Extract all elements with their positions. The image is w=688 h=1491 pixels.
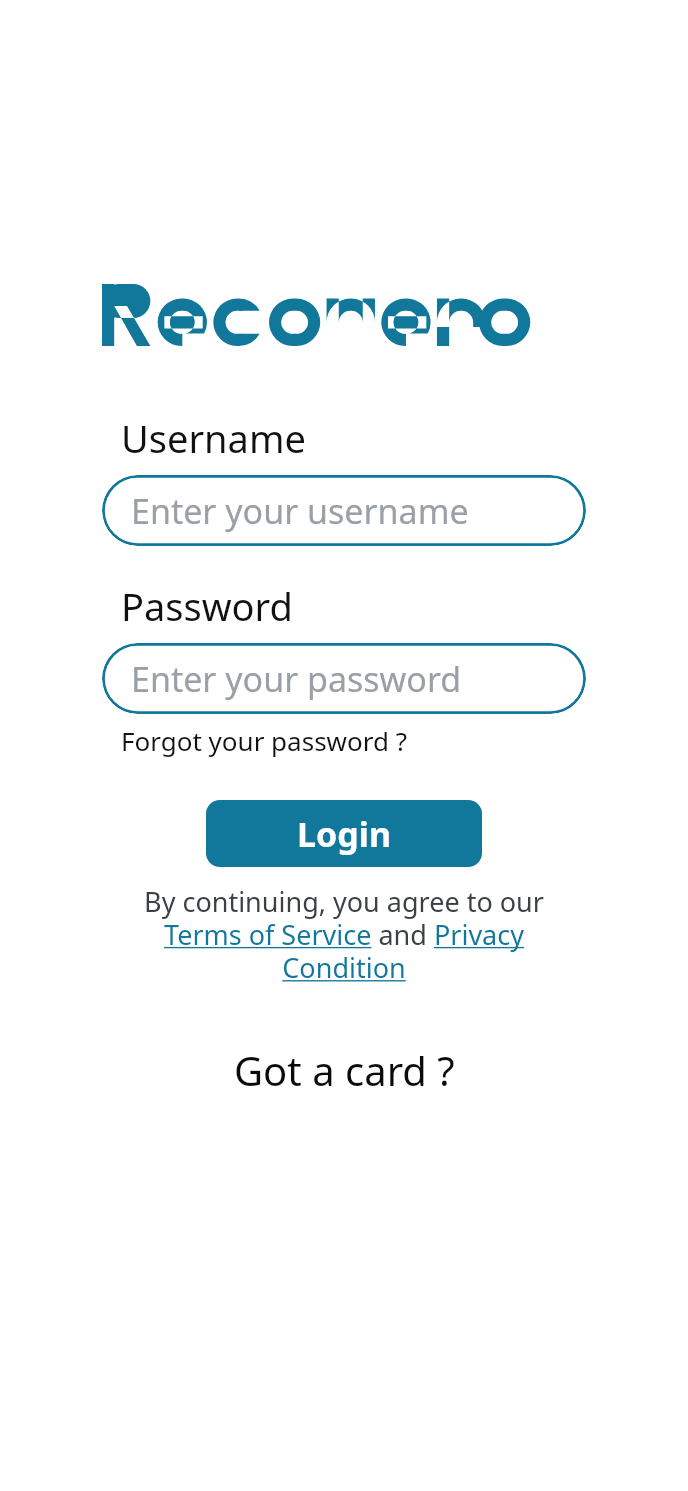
button[interactable]: By continuing, you agree to our Terms of… xyxy=(102,883,586,986)
button[interactable]: Enter your username xyxy=(102,475,586,546)
staticText: Enter your username xyxy=(131,488,469,534)
staticText: Enter your password xyxy=(131,656,462,702)
button[interactable]: Got a card ? xyxy=(234,1043,455,1097)
button[interactable]: Enter your password xyxy=(102,643,586,714)
staticText: Username xyxy=(121,412,306,464)
button[interactable]: Login xyxy=(206,800,482,867)
staticText: Password xyxy=(121,580,293,632)
button[interactable]: Forgot your password ? xyxy=(121,723,408,758)
staticText: Login xyxy=(297,811,392,857)
